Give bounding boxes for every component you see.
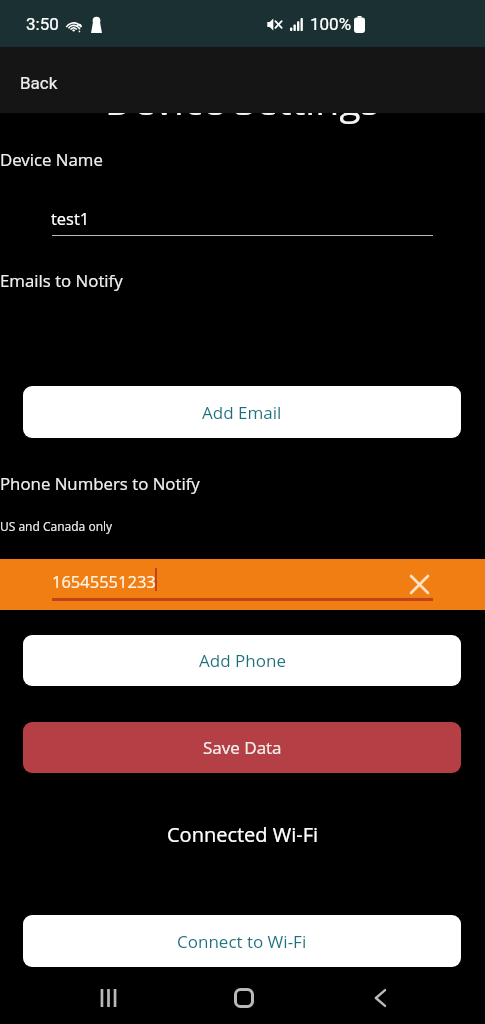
button[interactable]: Add Phone — [23, 635, 461, 686]
staticText: Add Email — [202, 401, 282, 424]
staticText: test1 — [51, 207, 90, 229]
staticText: Device Settings — [105, 73, 380, 126]
staticText: Phone Numbers to Notify — [0, 472, 200, 495]
staticText: Emails to Notify — [0, 269, 123, 292]
staticText: Save Data — [203, 736, 282, 759]
button[interactable]: Add Email — [23, 386, 461, 438]
staticText: US and Canada only — [0, 518, 113, 534]
button[interactable]: Connect to Wi-Fi — [23, 915, 461, 967]
staticText: Back — [20, 73, 58, 93]
button[interactable]: Recent apps — [74, 974, 142, 1021]
staticText: 100% — [310, 14, 352, 34]
staticText: Connected Wi-Fi — [167, 821, 319, 848]
staticText: Add Phone — [199, 649, 286, 672]
staticText: 3:50 — [26, 14, 59, 34]
button[interactable]: Back — [346, 974, 414, 1021]
button[interactable]: Home — [210, 974, 278, 1021]
button[interactable]: Save Data — [23, 722, 461, 773]
button[interactable]: Clear phone number — [401, 567, 437, 602]
staticText: Device Name — [0, 148, 103, 171]
staticText: Connect to Wi-Fi — [177, 930, 307, 953]
staticText: 16545551233 — [52, 570, 156, 592]
button[interactable]: Back — [0, 63, 78, 103]
